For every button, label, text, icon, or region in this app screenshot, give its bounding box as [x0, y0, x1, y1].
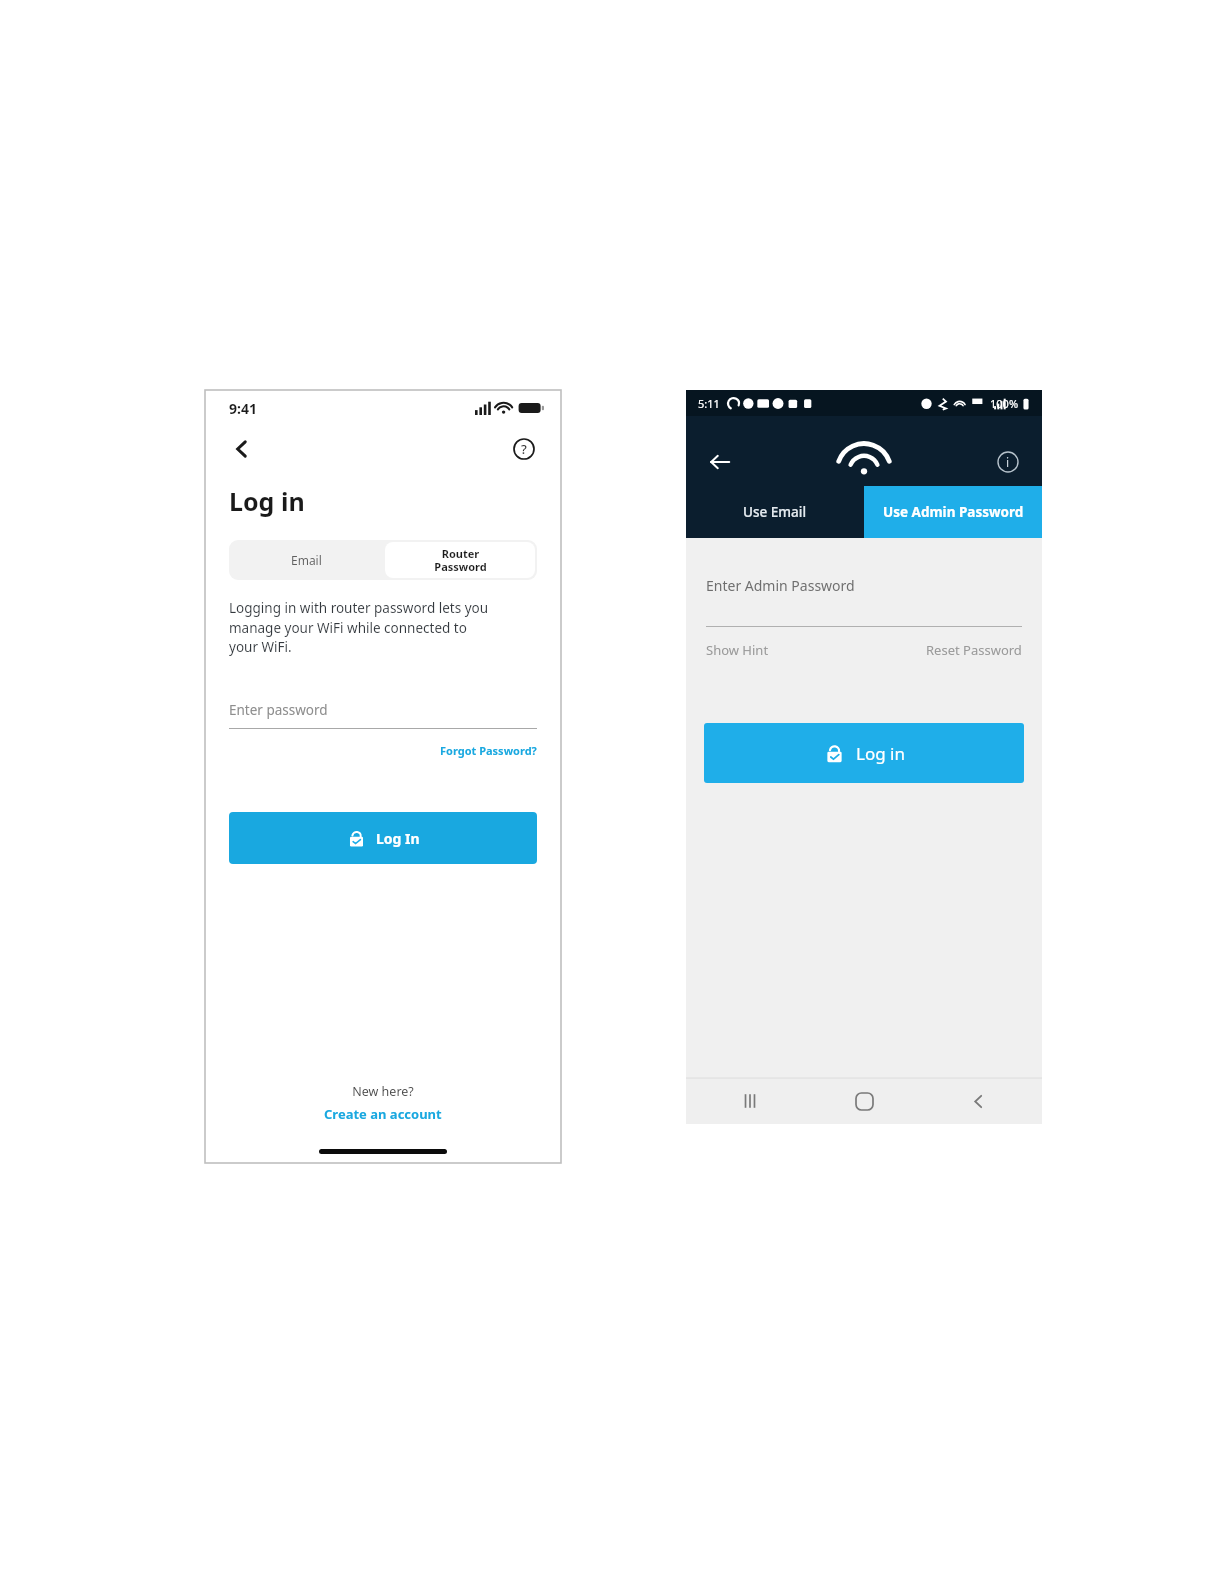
staticText: Log in — [856, 742, 905, 765]
staticText: Log In — [376, 829, 420, 848]
button[interactable]: Create an account — [324, 1105, 442, 1123]
button[interactable]: Use Admin Password — [864, 486, 1042, 538]
button[interactable]: Use Email — [686, 486, 864, 538]
staticText: Enter password — [229, 701, 328, 719]
button[interactable]: Home — [844, 1081, 884, 1121]
staticText: Log in — [229, 484, 305, 518]
staticText: Create an account — [324, 1105, 442, 1123]
staticText: Logging in with router password lets you… — [229, 599, 489, 656]
button[interactable]: Email — [229, 540, 383, 580]
button[interactable]: Show Hint — [706, 641, 769, 659]
button[interactable]: Back — [700, 442, 740, 482]
staticText: Show Hint — [706, 641, 769, 659]
button[interactable]: Recents — [730, 1081, 770, 1121]
staticText: New here? — [205, 1083, 561, 1100]
button[interactable]: Log In — [229, 812, 537, 864]
staticText: Router Password — [434, 546, 487, 574]
staticText: 9:41 — [229, 399, 257, 418]
staticText: Use Admin Password — [883, 503, 1024, 521]
staticText: Enter Admin Password — [706, 576, 855, 595]
button[interactable]: Enter password — [229, 701, 537, 729]
button[interactable]: Reset Password — [926, 641, 1022, 659]
staticText: Email — [291, 552, 322, 568]
staticText: Forgot Password? — [440, 743, 537, 758]
button[interactable]: Forgot Password? — [440, 743, 537, 758]
button[interactable]: Help — [507, 432, 541, 466]
staticText: i — [1006, 454, 1010, 470]
staticText: ? — [521, 440, 527, 458]
staticText: Reset Password — [926, 641, 1022, 659]
staticText: Use Email — [743, 503, 807, 521]
button[interactable]: Back — [225, 432, 259, 466]
button[interactable]: Back — [958, 1081, 998, 1121]
button[interactable]: Router Password — [385, 542, 535, 578]
button[interactable]: Enter Admin Password — [706, 576, 1022, 627]
staticText: 100% — [990, 396, 1019, 411]
staticText: 5:11 — [698, 396, 720, 411]
button[interactable]: Info — [988, 442, 1028, 482]
button[interactable]: Log in — [704, 723, 1024, 783]
